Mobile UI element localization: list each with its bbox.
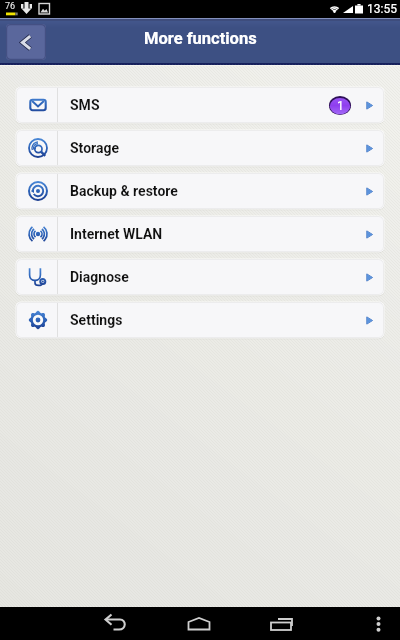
button[interactable]: SMS (16, 87, 384, 123)
staticText: Storage (70, 140, 120, 156)
button[interactable]: More options (366, 607, 400, 640)
button[interactable]: Settings (16, 302, 384, 338)
staticText: Internet WLAN (70, 226, 163, 242)
staticText: 13:55 (367, 2, 397, 16)
button[interactable]: Internet WLAN (16, 216, 384, 252)
staticText: SMS (70, 97, 100, 113)
staticText: 1 (337, 99, 344, 113)
button[interactable]: Back (6, 24, 46, 60)
button[interactable]: Storage (16, 130, 384, 166)
button[interactable]: Back (90, 607, 140, 640)
staticText: 76 (5, 1, 16, 12)
staticText: Diagnose (70, 269, 129, 285)
button[interactable]: Home (175, 607, 225, 640)
staticText: More functions (144, 29, 257, 48)
staticText: Settings (70, 312, 123, 328)
button[interactable]: Diagnose (16, 259, 384, 295)
staticText: Backup & restore (70, 183, 178, 199)
button[interactable]: Backup & restore (16, 173, 384, 209)
button[interactable]: Recents (261, 607, 311, 640)
